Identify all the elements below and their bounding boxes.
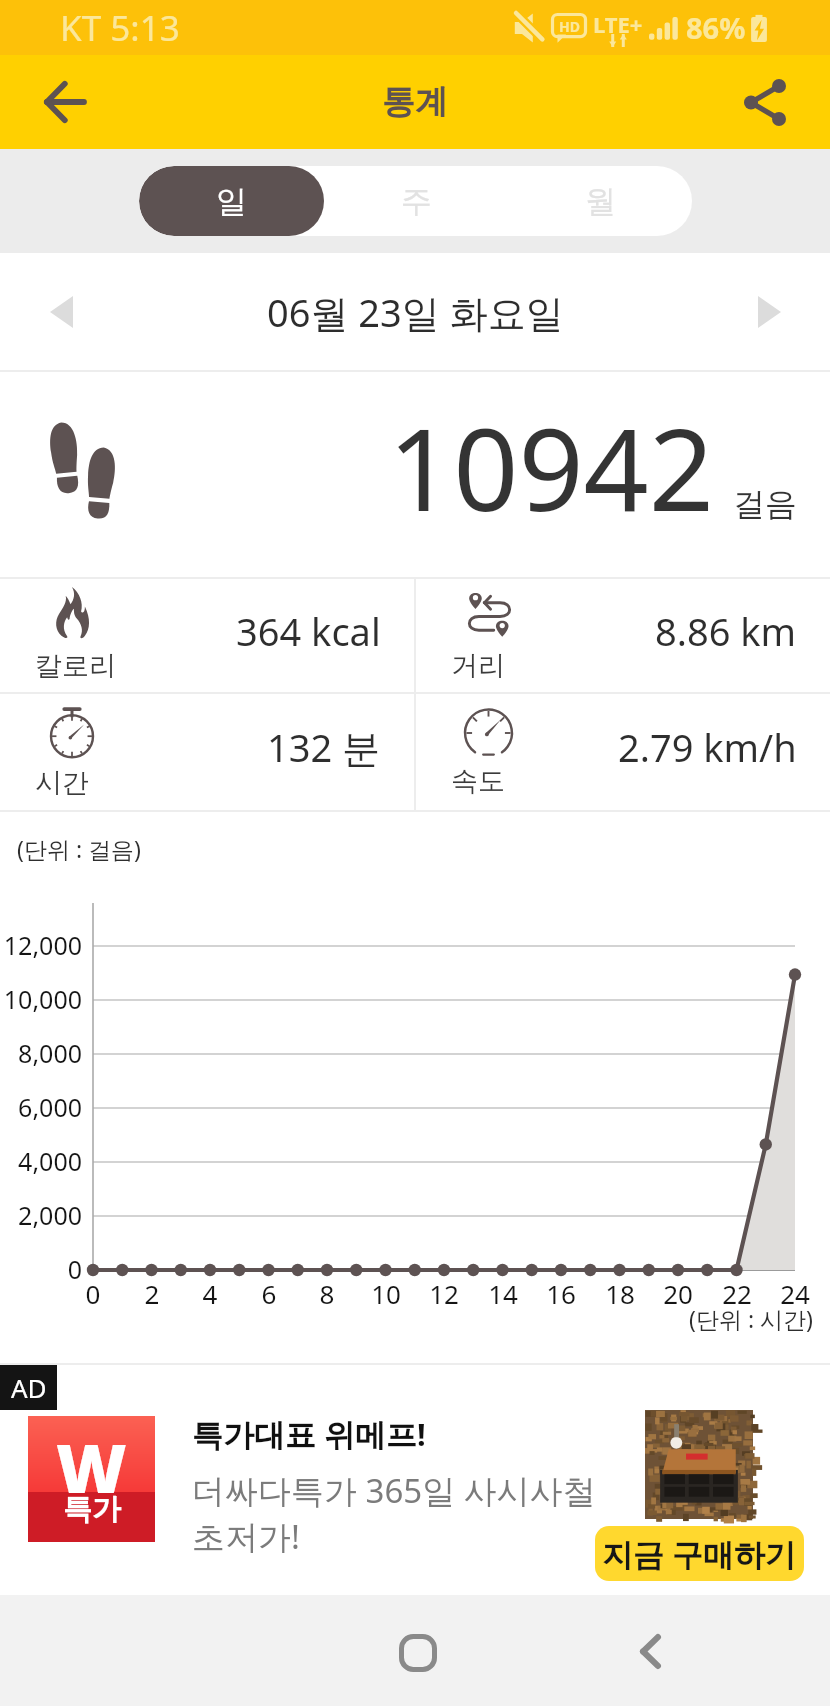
staticText: W [56, 1420, 127, 1513]
staticText: 14 [473, 1276, 533, 1311]
button[interactable]: 거리 [416, 579, 830, 692]
button[interactable]: AD [0, 1365, 830, 1595]
staticText: 132 분 [267, 721, 381, 773]
button[interactable]: 칼로리 [0, 579, 414, 692]
staticText: 2 [122, 1276, 182, 1311]
button[interactable]: 일 [139, 166, 324, 236]
staticText: 칼로리 [35, 649, 116, 683]
staticText: KT 5:13 [60, 4, 180, 52]
button[interactable]: Back [0, 55, 128, 149]
staticText: 지금 구매하기 [602, 1533, 797, 1575]
staticText: 2,000 [0, 1198, 82, 1232]
staticText: 주 [401, 182, 432, 221]
button[interactable]: Back [605, 1606, 695, 1696]
staticText: 걸음 [733, 484, 797, 524]
staticText: 8 [297, 1276, 357, 1311]
staticText: 4 [180, 1276, 240, 1311]
staticText: 8,000 [0, 1036, 82, 1070]
staticText: 86% [686, 8, 746, 47]
staticText: 6,000 [0, 1090, 82, 1124]
staticText: 24 [765, 1276, 825, 1311]
staticText: 거리 [451, 649, 505, 683]
button[interactable]: Share [700, 55, 830, 149]
staticText: 2.79 km/h [618, 721, 797, 773]
staticText: 속도 [451, 764, 505, 798]
staticText: HD [559, 17, 580, 36]
staticText: 06월 23일 화요일 [267, 286, 564, 338]
staticText: 통계 [382, 81, 448, 123]
staticText: (단위 : 시간) [689, 1303, 813, 1334]
button[interactable]: 속도 [416, 694, 830, 810]
staticText: 0 [0, 1252, 82, 1286]
staticText: 더싸다특가 365일 사시사철 [192, 1468, 596, 1513]
staticText: 10,000 [0, 982, 82, 1016]
staticText: 22 [707, 1276, 767, 1311]
button[interactable]: 시간 [0, 694, 414, 810]
button[interactable]: Home [373, 1608, 463, 1698]
button[interactable]: Next day [736, 279, 802, 345]
staticText: 월 [585, 182, 616, 221]
button[interactable]: 주 [324, 166, 508, 236]
staticText: 10 [356, 1276, 416, 1311]
staticText: 초저가! [192, 1514, 300, 1559]
staticText: 특가대표 위메프! [192, 1413, 426, 1455]
staticText: 4,000 [0, 1144, 82, 1178]
button[interactable]: 월 [508, 166, 692, 236]
staticText: 일 [216, 182, 247, 221]
staticText: 10942 [388, 389, 715, 544]
staticText: AD [11, 1370, 47, 1405]
staticText: LTE+ [593, 9, 643, 39]
staticText: 12,000 [0, 928, 82, 962]
button[interactable]: Previous day [28, 279, 94, 345]
staticText: 특가 [63, 1491, 121, 1528]
staticText: 364 kcal [236, 605, 381, 657]
staticText: 12 [414, 1276, 474, 1311]
staticText: (단위 : 걸음) [17, 833, 141, 864]
staticText: 0 [63, 1276, 123, 1311]
staticText: 16 [531, 1276, 591, 1311]
staticText: 6 [239, 1276, 299, 1311]
staticText: 8.86 km [655, 605, 797, 657]
button[interactable]: 지금 구매하기 [595, 1526, 804, 1581]
staticText: 시간 [35, 766, 89, 800]
staticText: 18 [590, 1276, 650, 1311]
staticText: 20 [648, 1276, 708, 1311]
